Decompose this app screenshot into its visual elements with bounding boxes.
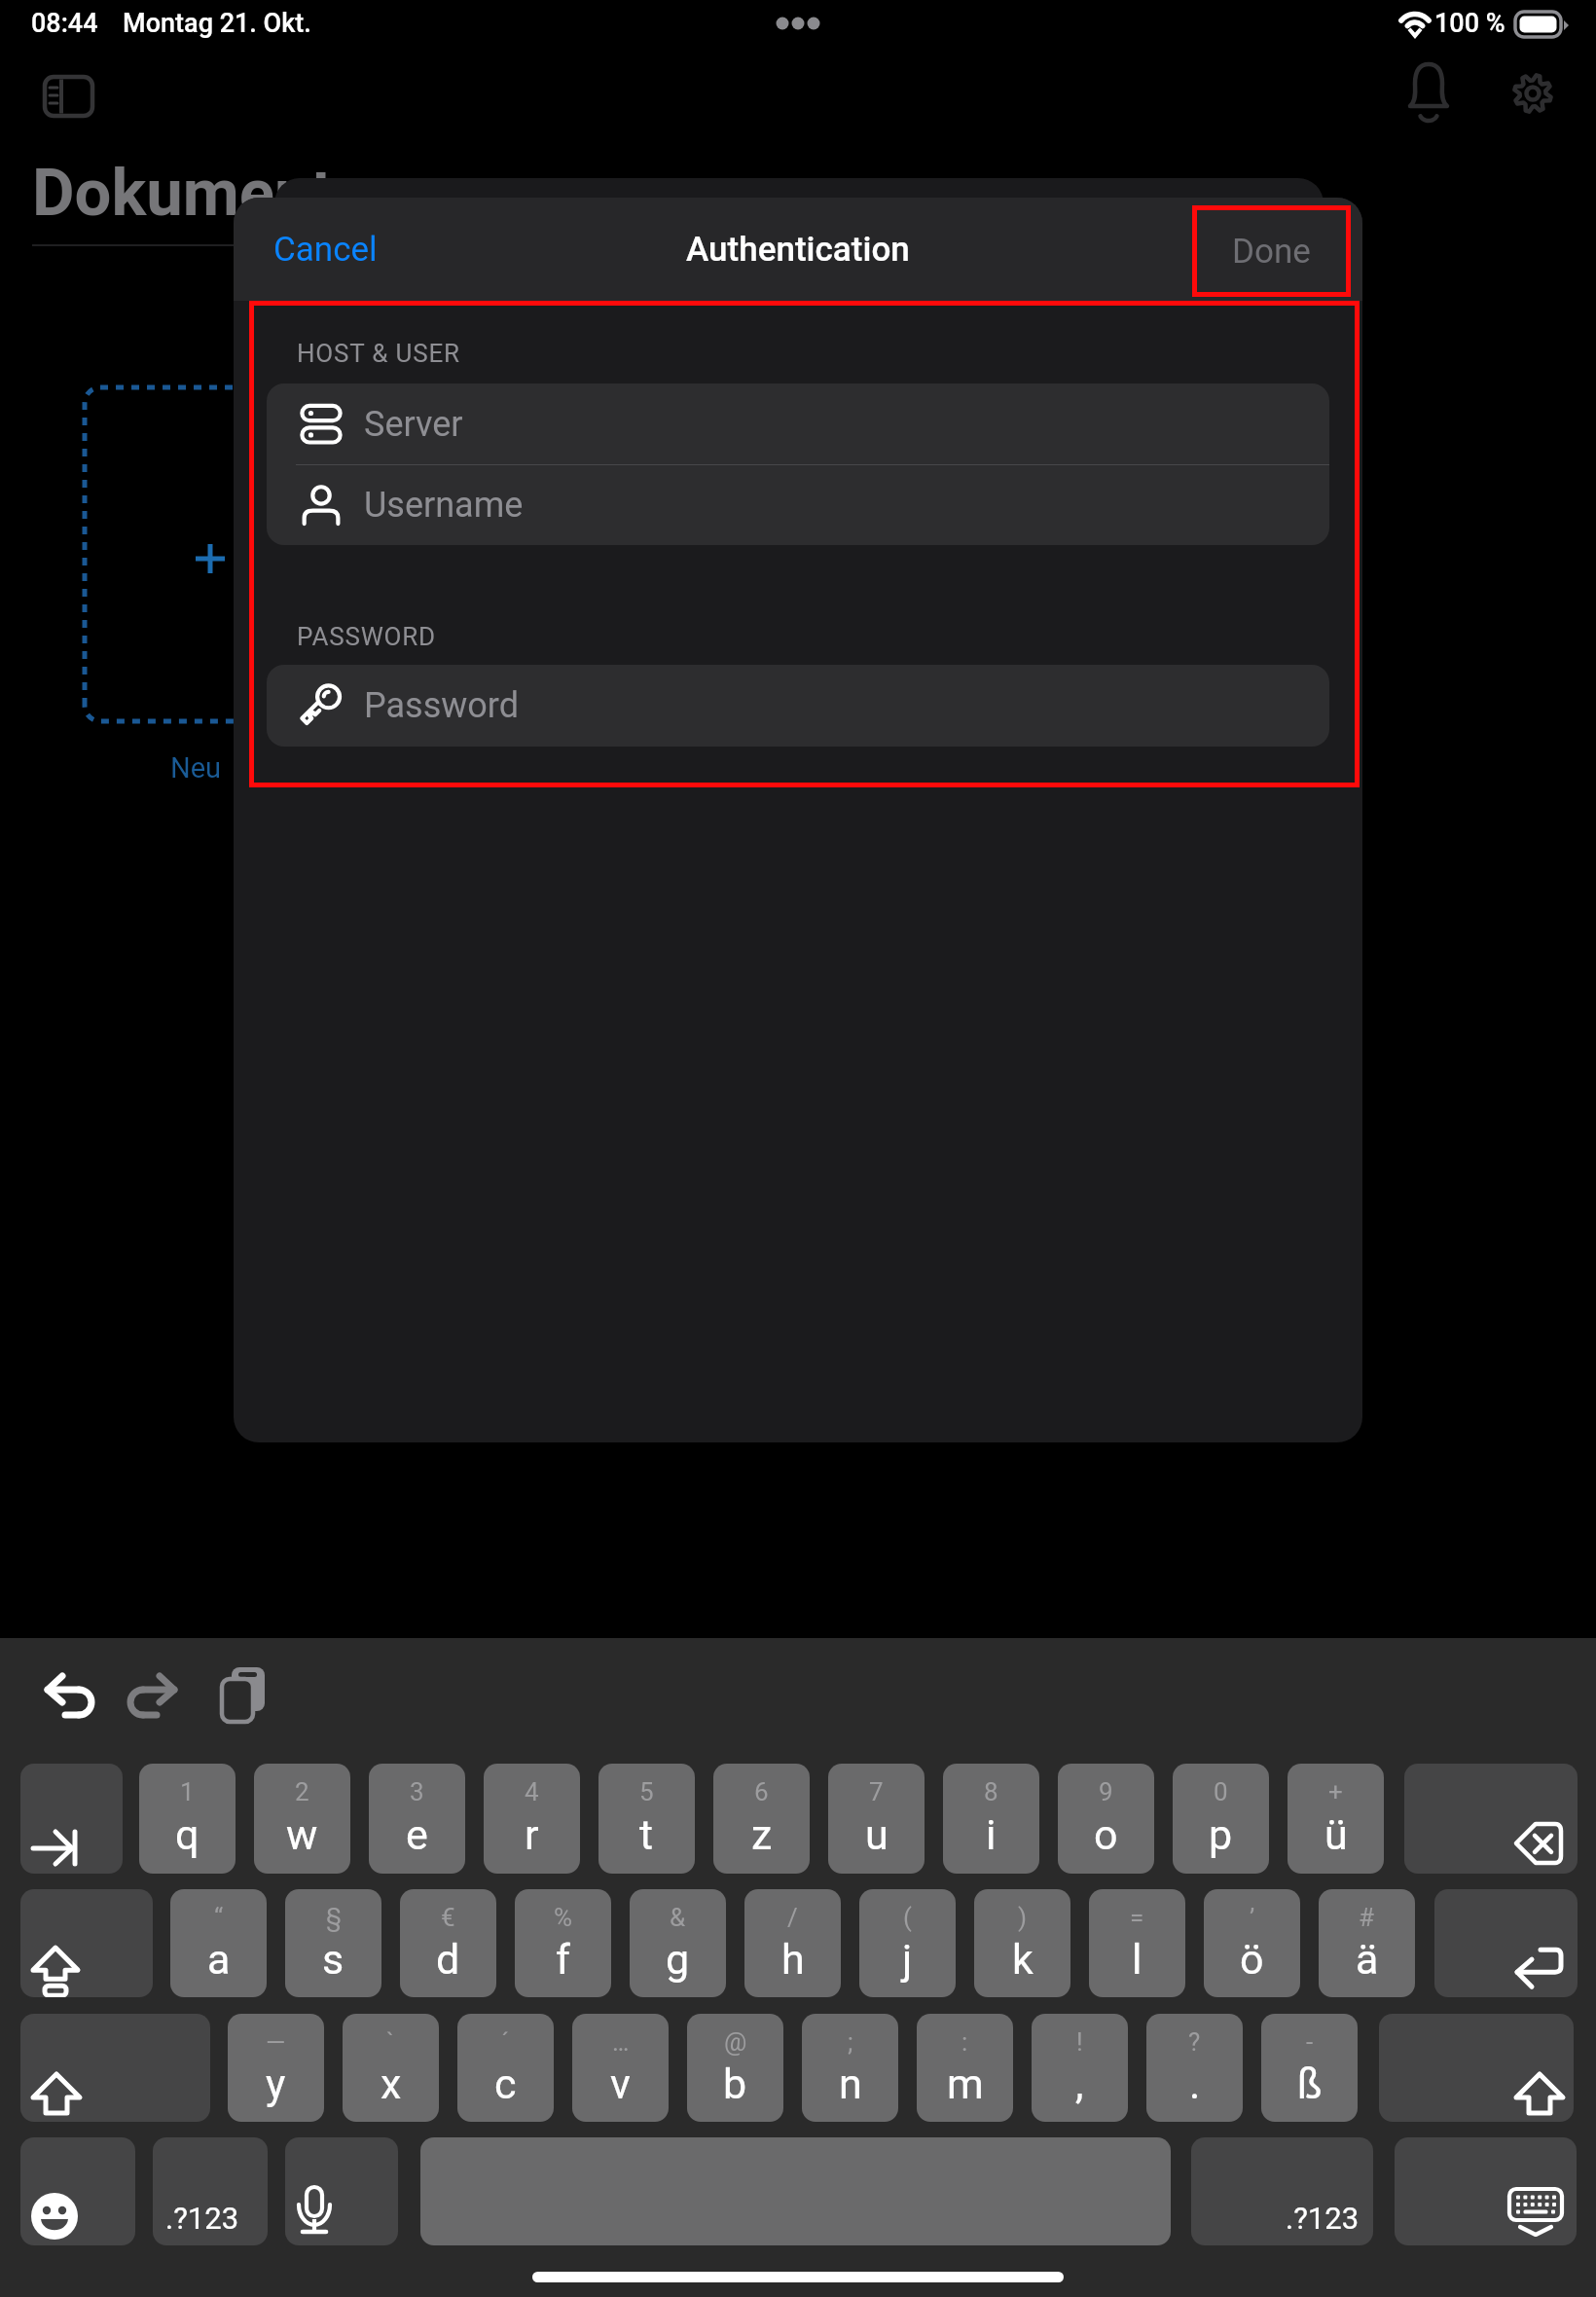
button[interactable]: ) bbox=[974, 1889, 1070, 1997]
button[interactable]: 7 bbox=[828, 1764, 925, 1874]
staticText: a bbox=[207, 1935, 231, 1984]
button[interactable]: % bbox=[515, 1889, 611, 1997]
button[interactable]: 9 bbox=[1058, 1764, 1154, 1874]
staticText: Done bbox=[1232, 232, 1311, 272]
staticText: ` bbox=[386, 2027, 395, 2057]
button[interactable]: ´ bbox=[457, 2014, 554, 2122]
button[interactable]: .?123 bbox=[153, 2137, 268, 2245]
staticText: t bbox=[639, 1810, 654, 1859]
staticText: ) bbox=[1018, 1903, 1028, 1932]
staticText: 7 bbox=[869, 1777, 884, 1806]
button[interactable]: 0 bbox=[1173, 1764, 1269, 1874]
button[interactable]: Done bbox=[1192, 205, 1351, 297]
button[interactable]: 6 bbox=[713, 1764, 810, 1874]
button[interactable]: .?123 bbox=[1191, 2137, 1373, 2245]
staticText: 3 bbox=[410, 1777, 424, 1806]
staticText: i bbox=[986, 1810, 997, 1859]
button[interactable]: Cancel bbox=[242, 198, 408, 301]
button[interactable]: Neu bbox=[141, 742, 250, 794]
button[interactable]: Username bbox=[267, 464, 1329, 545]
staticText: Montag 21. Okt. bbox=[123, 8, 311, 39]
staticText: 100 % bbox=[1434, 8, 1505, 39]
button[interactable]: ` bbox=[343, 2014, 439, 2122]
button[interactable]: Emoji bbox=[20, 2137, 135, 2245]
button[interactable]: — bbox=[228, 2014, 324, 2122]
button[interactable]: - bbox=[1261, 2014, 1358, 2122]
button[interactable]: 8 bbox=[943, 1764, 1039, 1874]
staticText: o bbox=[1094, 1810, 1118, 1859]
staticText: % bbox=[554, 1903, 573, 1932]
staticText: c bbox=[494, 2060, 517, 2108]
staticText: d bbox=[436, 1935, 460, 1984]
button[interactable]: Notifications bbox=[1386, 55, 1471, 140]
button[interactable]: Hide keyboard bbox=[1395, 2137, 1577, 2245]
staticText: b bbox=[723, 2060, 747, 2108]
button[interactable] bbox=[85, 387, 326, 721]
staticText: & bbox=[670, 1903, 686, 1932]
button[interactable]: Password bbox=[267, 665, 1329, 747]
staticText: : bbox=[961, 2027, 968, 2057]
staticText: ü bbox=[1324, 1810, 1348, 1859]
button[interactable]: Return bbox=[1434, 1889, 1578, 1997]
staticText: - bbox=[1306, 2027, 1314, 2057]
button[interactable]: “ bbox=[170, 1889, 267, 1997]
button[interactable] bbox=[420, 2137, 1171, 2245]
staticText: ’ bbox=[1250, 1903, 1255, 1932]
button[interactable]: Tab bbox=[20, 1764, 123, 1874]
staticText: 4 bbox=[525, 1777, 539, 1806]
staticText: ´ bbox=[501, 2027, 510, 2057]
button[interactable]: : bbox=[917, 2014, 1013, 2122]
staticText: “ bbox=[214, 1903, 224, 1932]
button[interactable]: # bbox=[1319, 1889, 1415, 1997]
staticText: x bbox=[381, 2060, 402, 2108]
staticText: 1 bbox=[180, 1777, 195, 1806]
staticText: q bbox=[175, 1810, 199, 1859]
button[interactable]: 3 bbox=[369, 1764, 465, 1874]
button[interactable]: ( bbox=[859, 1889, 956, 1997]
button[interactable]: + bbox=[1288, 1764, 1384, 1874]
button[interactable]: / bbox=[744, 1889, 841, 1997]
staticText: k bbox=[1012, 1935, 1034, 1984]
staticText: 0 bbox=[1214, 1777, 1228, 1806]
button[interactable]: 5 bbox=[598, 1764, 695, 1874]
button[interactable]: Dictate bbox=[285, 2137, 398, 2245]
button[interactable]: ; bbox=[802, 2014, 898, 2122]
button[interactable]: 4 bbox=[484, 1764, 580, 1874]
button[interactable]: 2 bbox=[254, 1764, 350, 1874]
staticText: € bbox=[441, 1903, 455, 1932]
staticText: 6 bbox=[754, 1777, 769, 1806]
staticText: ? bbox=[1188, 2027, 1201, 2057]
button[interactable]: Shift bbox=[1379, 2014, 1574, 2122]
button[interactable]: Paste bbox=[206, 1659, 276, 1720]
button[interactable]: € bbox=[400, 1889, 496, 1997]
button[interactable]: ? bbox=[1146, 2014, 1243, 2122]
staticText: ( bbox=[903, 1903, 912, 1932]
staticText: Password bbox=[364, 685, 520, 726]
staticText: g bbox=[666, 1935, 690, 1984]
staticText: / bbox=[787, 1903, 798, 1932]
staticText: 8 bbox=[984, 1777, 998, 1806]
staticText: n bbox=[839, 2060, 862, 2108]
button[interactable]: @ bbox=[687, 2014, 783, 2122]
button[interactable]: Shift bbox=[20, 2014, 210, 2122]
staticText: h bbox=[781, 1935, 805, 1984]
button[interactable]: Settings bbox=[1490, 55, 1576, 140]
button[interactable]: 1 bbox=[139, 1764, 236, 1874]
button[interactable]: Caps lock bbox=[20, 1889, 153, 1997]
button[interactable]: § bbox=[285, 1889, 381, 1997]
button[interactable]: & bbox=[630, 1889, 726, 1997]
button[interactable]: ! bbox=[1032, 2014, 1128, 2122]
staticText: . bbox=[1189, 2060, 1201, 2108]
button[interactable]: Redo bbox=[115, 1659, 185, 1720]
button[interactable]: ’ bbox=[1204, 1889, 1300, 1997]
button[interactable]: = bbox=[1089, 1889, 1185, 1997]
staticText: @ bbox=[724, 2027, 747, 2057]
button[interactable]: Show sidebar bbox=[27, 60, 111, 132]
staticText: — bbox=[266, 2027, 286, 2057]
button[interactable]: Undo bbox=[27, 1659, 97, 1720]
staticText: , bbox=[1075, 2060, 1084, 2108]
button[interactable]: Server bbox=[267, 383, 1329, 464]
button[interactable]: … bbox=[572, 2014, 669, 2122]
button[interactable]: Backspace bbox=[1404, 1764, 1578, 1874]
staticText: Cancel bbox=[273, 230, 378, 270]
